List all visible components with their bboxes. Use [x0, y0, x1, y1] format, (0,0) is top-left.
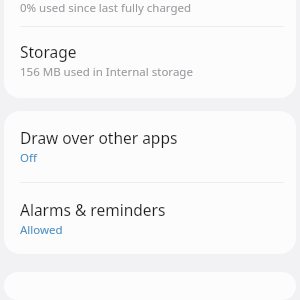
staticText: 156 MB used in Internal storage — [20, 64, 193, 80]
button[interactable]: Storage — [4, 27, 296, 98]
staticText: Alarms & reminders — [20, 199, 166, 220]
staticText: Storage — [20, 41, 77, 62]
staticText: Allowed — [20, 222, 63, 238]
button[interactable]: Draw over other apps — [4, 111, 296, 182]
staticText: 0% used since last fully charged — [20, 0, 192, 16]
staticText: Off — [20, 150, 37, 166]
staticText: Draw over other apps — [20, 127, 178, 148]
button[interactable]: Alarms & reminders — [4, 183, 296, 254]
button[interactable]: 0% used since last fully charged — [4, 0, 296, 26]
